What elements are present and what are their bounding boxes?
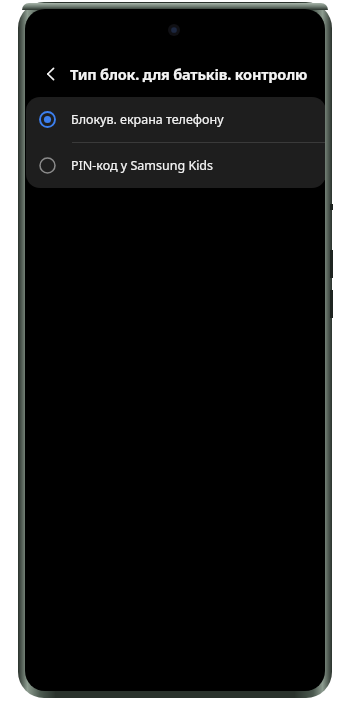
button[interactable]: Блокув. екрана телефону (26, 97, 325, 142)
button[interactable]: Back (38, 61, 64, 87)
staticText: Тип блок. для батьків. контролю (70, 64, 308, 84)
button[interactable]: PIN-код у Samsung Kids (26, 143, 325, 188)
staticText: PIN-код у Samsung Kids (71, 157, 214, 174)
staticText: Блокув. екрана телефону (71, 111, 224, 128)
